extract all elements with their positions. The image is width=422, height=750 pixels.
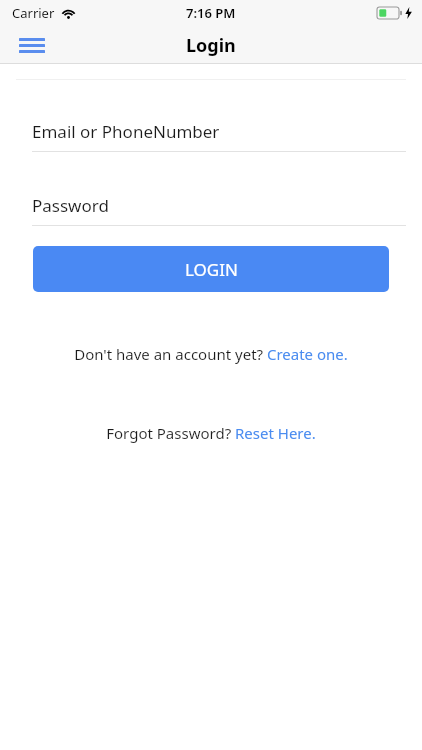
button[interactable]: Email or PhoneNumber	[0, 111, 422, 152]
staticText: Password	[32, 194, 109, 217]
staticText: 7:16 PM	[186, 4, 236, 22]
staticText: Login	[186, 33, 236, 58]
staticText: LOGIN	[185, 258, 238, 281]
staticText: Forgot Password? Reset Here.	[106, 423, 316, 443]
button[interactable]: Password	[0, 185, 422, 226]
button[interactable]: Open navigation menu	[10, 28, 54, 62]
staticText: Email or PhoneNumber	[32, 120, 220, 143]
button[interactable]: LOGIN	[33, 246, 389, 292]
button[interactable]: Don't have an account yet? Create one.	[0, 342, 422, 366]
staticText: Carrier	[12, 4, 55, 22]
button[interactable]: Forgot Password? Reset Here.	[0, 421, 422, 445]
staticText: Don't have an account yet? Create one.	[74, 344, 348, 364]
